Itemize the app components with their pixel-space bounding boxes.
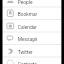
staticText: Calendar	[18, 24, 37, 30]
button[interactable]: Twitter	[0, 45, 64, 58]
staticText: Messaging	[18, 37, 37, 42]
staticText: Bookmarks	[18, 12, 37, 17]
button[interactable]: Contacts	[0, 57, 64, 64]
button[interactable]: Bookmarks	[0, 7, 64, 20]
staticText: People	[18, 0, 32, 5]
button[interactable]: Calendar	[0, 20, 64, 33]
button[interactable]: Messaging	[0, 32, 64, 45]
button[interactable]: People	[0, 0, 64, 8]
staticText: Contacts	[18, 62, 37, 64]
staticText: Twitter	[18, 49, 33, 55]
